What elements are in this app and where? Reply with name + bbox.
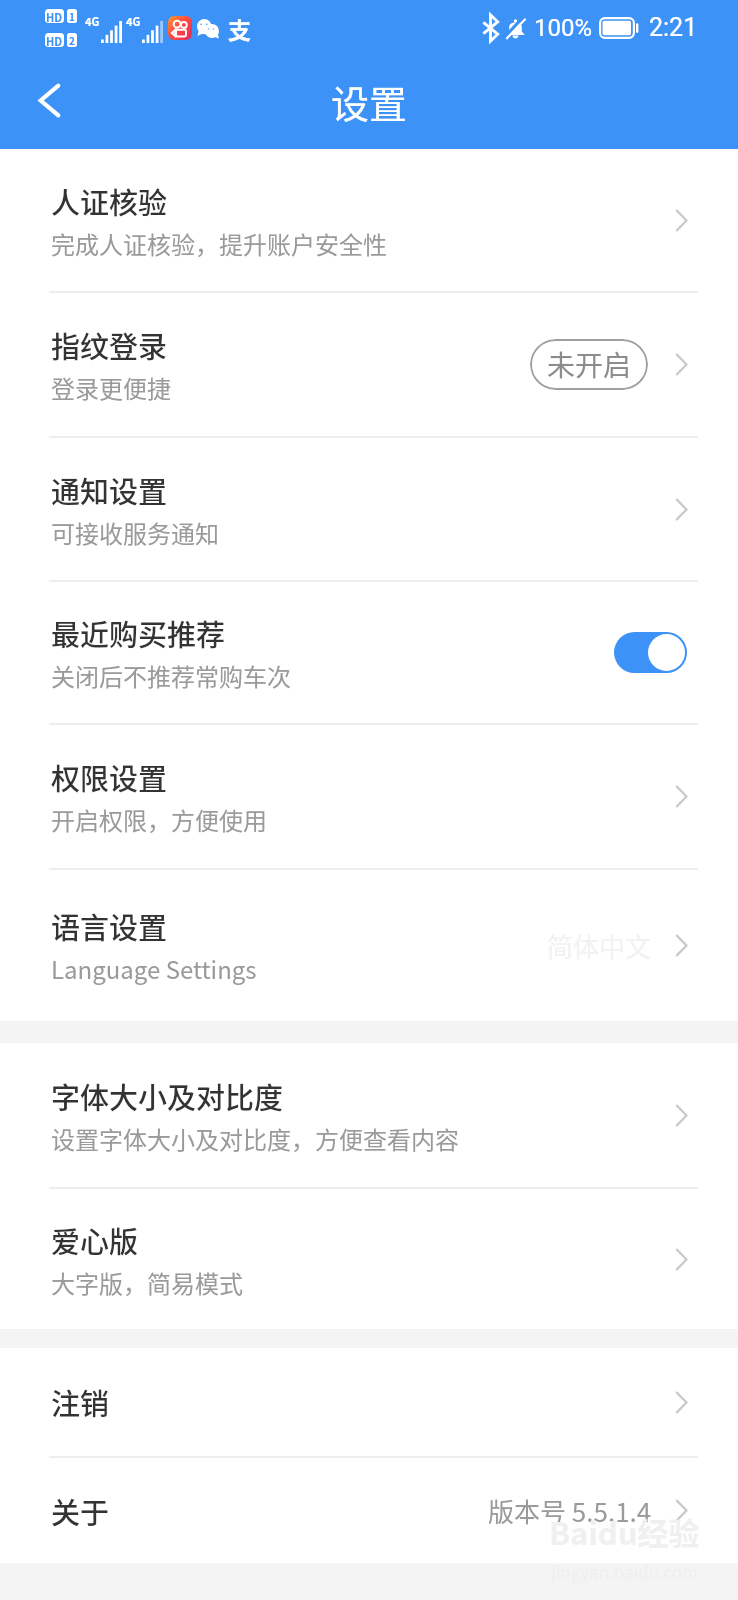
staticText: 爱心版	[51, 1219, 139, 1261]
staticText: 设置字体大小及对比度，方便查看内容	[51, 1121, 459, 1156]
staticText: 1	[69, 9, 75, 23]
staticText: jingyan.baidu.com	[551, 1559, 698, 1584]
staticText: 登录更便捷	[51, 370, 171, 405]
button[interactable]: Toggle recent purchase suggestions	[614, 632, 687, 673]
button[interactable]: 人证核验	[0, 149, 738, 291]
staticText: 字体大小及对比度	[51, 1075, 284, 1117]
staticText: 设置	[331, 74, 408, 129]
staticText: 可接收服务通知	[51, 515, 219, 550]
staticText: 语言设置	[51, 905, 168, 947]
staticText: 完成人证核验，提升账户安全性	[51, 226, 387, 261]
button[interactable]: 通知设置	[0, 438, 738, 580]
staticText: 2	[69, 33, 75, 47]
staticText: Baidu经验	[549, 1509, 700, 1554]
button[interactable]: 最近购买推荐	[0, 582, 738, 723]
staticText: 大字版，简易模式	[51, 1265, 243, 1300]
button[interactable]: 注销	[0, 1348, 738, 1456]
staticText: 4G	[85, 13, 100, 29]
staticText: 版本号 5.5.1.4	[488, 1492, 652, 1530]
staticText: 指纹登录	[51, 324, 168, 366]
staticText: 简体中文	[547, 927, 652, 965]
staticText: 4G	[126, 13, 141, 29]
staticText: 开启权限，方便使用	[51, 802, 267, 837]
staticText: 支	[228, 12, 251, 45]
staticText: 通知设置	[51, 469, 168, 511]
button[interactable]: 未开启	[530, 339, 648, 390]
button[interactable]: 权限设置	[0, 725, 738, 868]
button[interactable]: 字体大小及对比度	[0, 1043, 738, 1187]
staticText: 未开启	[547, 344, 632, 385]
button[interactable]: 指纹登录	[0, 293, 738, 436]
staticText: 关闭后不推荐常购车次	[51, 658, 291, 693]
staticText: 关于	[51, 1490, 110, 1532]
staticText: HD	[46, 9, 63, 23]
staticText: Language Settings	[51, 951, 257, 986]
staticText: HD	[46, 33, 63, 47]
staticText: 2:21	[649, 13, 698, 42]
staticText: 注销	[51, 1381, 110, 1423]
button[interactable]: Back	[0, 55, 98, 149]
staticText: 人证核验	[51, 180, 168, 222]
staticText: 最近购买推荐	[51, 612, 226, 654]
button[interactable]: 爱心版	[0, 1189, 738, 1329]
staticText: 权限设置	[51, 756, 168, 798]
staticText: 100%	[534, 14, 593, 42]
button[interactable]: 关于	[0, 1458, 738, 1563]
button[interactable]: 语言设置	[0, 870, 738, 1021]
